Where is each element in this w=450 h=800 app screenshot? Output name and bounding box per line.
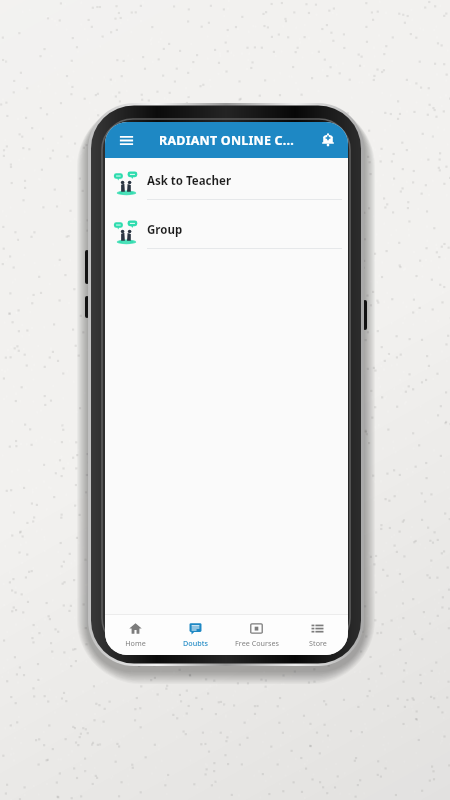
staticText: RADIANT ONLINE C... — [159, 132, 294, 149]
button[interactable]: Ask to Teacher — [105, 158, 348, 207]
staticText: Doubts — [183, 638, 208, 648]
staticText: Ask to Teacher — [147, 173, 232, 189]
button[interactable]: Open navigation menu — [111, 125, 141, 155]
button[interactable]: Doubts — [165, 615, 226, 655]
button[interactable]: Home — [105, 615, 165, 655]
button[interactable]: Group — [105, 207, 348, 256]
staticText: Store — [309, 638, 327, 648]
button[interactable]: Notifications — [313, 125, 343, 155]
staticText: Home — [125, 638, 146, 648]
button[interactable]: Free Courses — [226, 615, 287, 655]
staticText: Free Courses — [235, 638, 279, 648]
button[interactable]: Store — [287, 615, 348, 655]
staticText: Group — [147, 222, 183, 238]
